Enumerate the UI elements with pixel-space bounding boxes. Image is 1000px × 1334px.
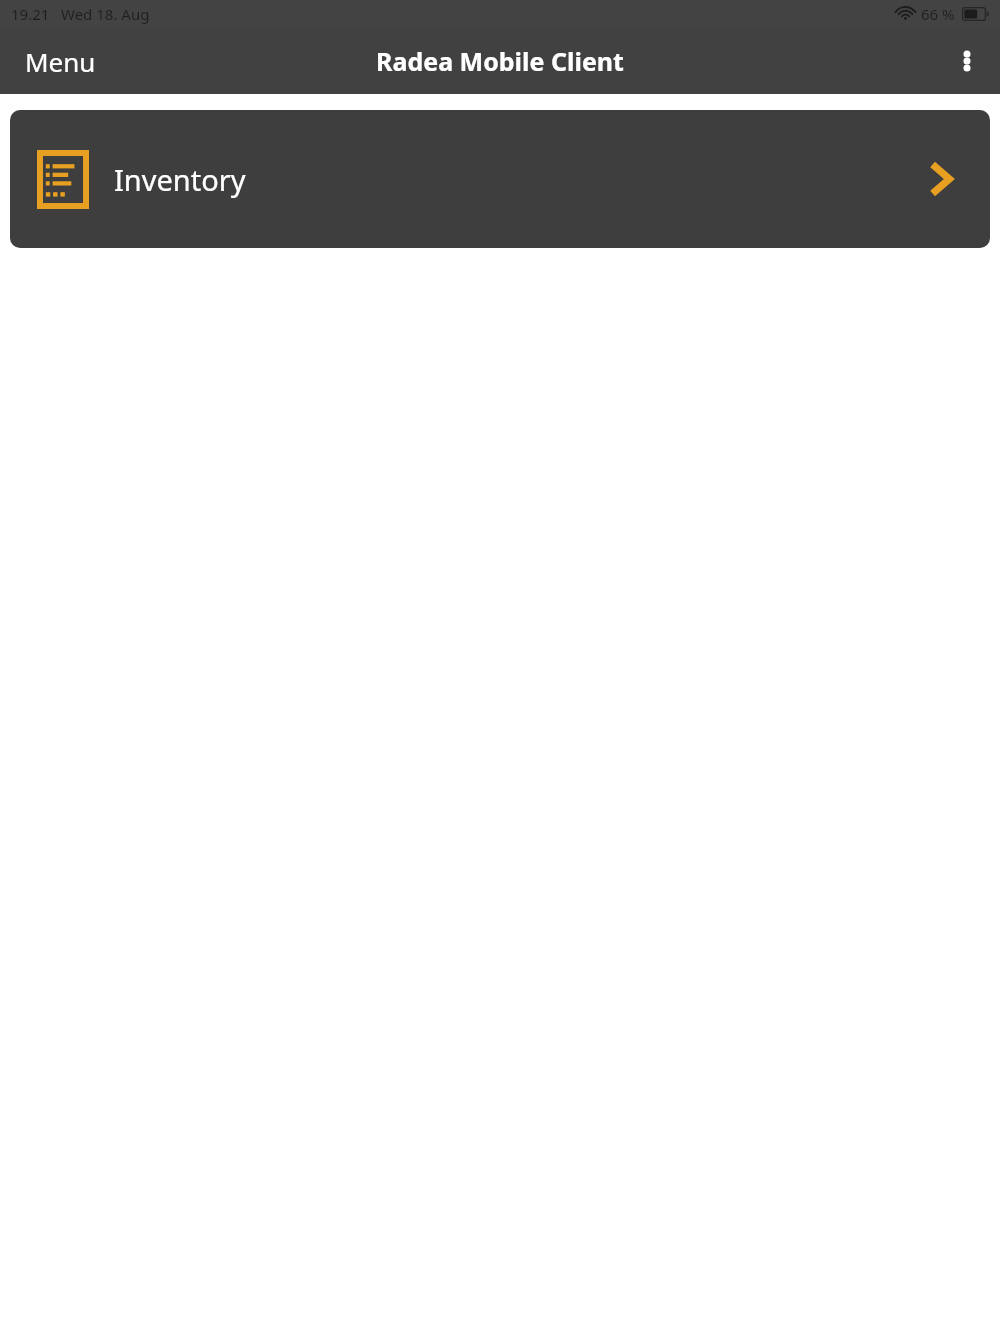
- button[interactable]: More options: [934, 28, 1000, 94]
- staticText: Radea Mobile Client: [376, 44, 624, 78]
- button[interactable]: Menu: [0, 32, 116, 91]
- other: Open Inventory: [919, 157, 963, 201]
- staticText: 66 %: [921, 4, 955, 24]
- staticText: Wed 18. Aug: [61, 4, 150, 24]
- button[interactable]: Inventory: [10, 110, 990, 248]
- staticText: Inventory: [114, 160, 246, 199]
- staticText: Menu: [25, 44, 96, 79]
- staticText: 19.21: [11, 4, 50, 24]
